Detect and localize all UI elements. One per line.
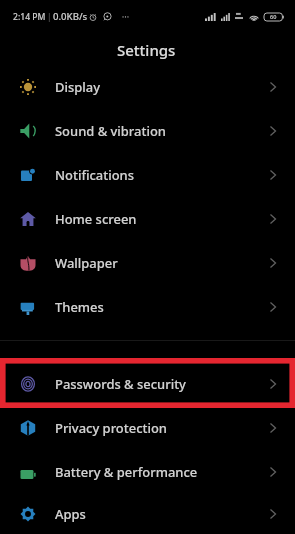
button[interactable]: Battery & performance — [0, 450, 295, 494]
button[interactable]: Passwords & security — [0, 362, 295, 406]
button[interactable]: Display — [0, 65, 295, 109]
button[interactable]: Home screen — [0, 197, 295, 241]
staticText: 0.0KB/s — [53, 10, 88, 23]
staticText: 60 — [270, 13, 277, 21]
staticText: Settings — [117, 40, 176, 60]
staticText: Battery & performance — [55, 463, 198, 481]
button[interactable]: Sound & vibration — [0, 109, 295, 153]
staticText: Apps — [55, 505, 86, 523]
staticText: Notifications — [55, 166, 134, 184]
staticText: Wallpaper — [55, 254, 118, 272]
staticText: | — [47, 11, 52, 22]
staticText: 2:14 PM — [13, 11, 46, 23]
staticText: Privacy protection — [55, 419, 167, 437]
staticText: Sound & vibration — [55, 122, 166, 140]
button[interactable]: Apps — [0, 494, 295, 534]
staticText: Home screen — [55, 210, 137, 228]
staticText: Passwords & security — [55, 375, 186, 393]
staticText: Themes — [55, 298, 104, 316]
button[interactable]: Wallpaper — [0, 241, 295, 285]
button[interactable]: Notifications — [0, 153, 295, 197]
staticText: Display — [55, 78, 100, 96]
button[interactable]: Privacy protection — [0, 406, 295, 450]
button[interactable]: Themes — [0, 285, 295, 329]
